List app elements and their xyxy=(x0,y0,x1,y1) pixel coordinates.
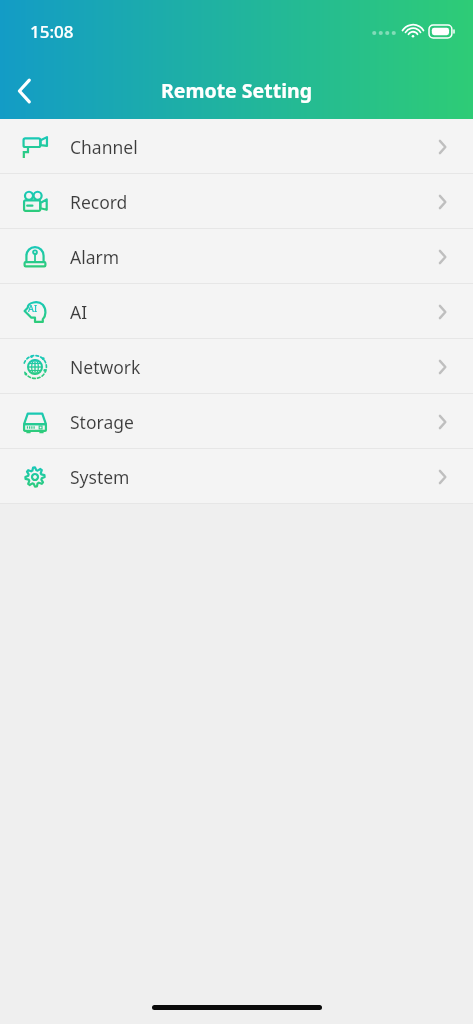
button[interactable]: Channel xyxy=(0,119,473,174)
button[interactable]: Storage xyxy=(0,394,473,449)
staticText: Alarm xyxy=(70,245,120,269)
button[interactable]: Network xyxy=(0,339,473,394)
staticText: AI xyxy=(28,302,38,314)
staticText: Remote Setting xyxy=(161,77,312,104)
staticText: Channel xyxy=(70,135,138,159)
staticText: 15:08 xyxy=(30,20,74,43)
staticText: Network xyxy=(70,355,141,379)
button[interactable]: Record xyxy=(0,174,473,229)
staticText: System xyxy=(70,465,130,489)
button[interactable]: Back xyxy=(0,67,48,115)
button[interactable]: Alarm xyxy=(0,229,473,284)
button[interactable]: AI xyxy=(0,284,473,339)
staticText: AI xyxy=(70,300,88,324)
staticText: Record xyxy=(70,190,128,214)
button[interactable]: System xyxy=(0,449,473,504)
staticText: Storage xyxy=(70,410,134,434)
